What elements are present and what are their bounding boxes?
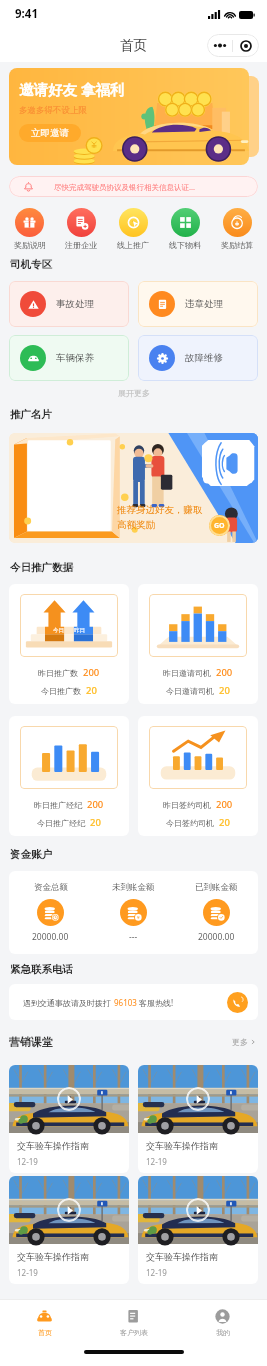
button[interactable]: 今日 [9, 584, 129, 704]
staticText: 今日签约司机 [166, 818, 214, 828]
staticText: 昨日邀请司机 [163, 668, 211, 678]
staticText: 首页 [38, 1328, 52, 1337]
button[interactable]: 昨日签约司机 [138, 716, 258, 836]
staticText: 遇到交通事故请及时拨打 [23, 997, 114, 1008]
staticText: 昨日推广数 [38, 668, 78, 678]
staticText: 客户列表 [120, 1328, 148, 1337]
staticText: 已到账金额 [195, 882, 238, 893]
button[interactable]: 奖励说明 [4, 208, 55, 250]
staticText: 200 [216, 666, 233, 679]
staticText: 20 [219, 684, 230, 697]
button[interactable]: 我的 [178, 1300, 267, 1344]
staticText: 尽快完成驾驶员协议及银行相关信息认证... [54, 182, 196, 192]
staticText: 奖励结算 [221, 240, 253, 250]
staticText: 奖励说明 [14, 240, 46, 250]
staticText: 线下物料 [169, 240, 201, 250]
other: Play video [186, 1198, 210, 1222]
other: Play video [57, 1087, 81, 1111]
staticText: 200 [216, 798, 233, 811]
staticText: 20000.00 [32, 931, 69, 943]
staticText: 线上推广 [117, 240, 149, 250]
staticText: --- [129, 931, 138, 943]
other: Go to promotion card [209, 515, 230, 536]
staticText: 今日推广经纪 [37, 818, 85, 828]
button[interactable]: 已到账金额 [175, 882, 258, 943]
button[interactable]: More options [207, 34, 232, 57]
staticText: 车辆保养 [56, 352, 94, 364]
staticText: 96103 [114, 997, 137, 1008]
button[interactable]: 尽快完成驾驶员协议及银行相关信息认证... [9, 176, 258, 197]
staticText: 20 [219, 816, 230, 829]
staticText: 交车验车操作指南 [146, 1140, 218, 1151]
staticText: 违章处理 [185, 298, 223, 310]
staticText: 事故处理 [56, 298, 94, 310]
staticText: 20000.00 [198, 931, 235, 943]
staticText: 首页 [120, 37, 147, 54]
button[interactable]: 事故处理 [9, 281, 129, 327]
staticText: 注册企业 [65, 240, 97, 250]
staticText: 营销课堂 [9, 1035, 230, 1049]
staticText: 资金总额 [34, 882, 68, 893]
staticText: 昨日签约司机 [163, 800, 211, 810]
staticText: 今日邀请司机 [166, 686, 214, 696]
button[interactable]: Play video [9, 1176, 129, 1284]
staticText: 20 [86, 684, 97, 697]
staticText: 12-19 [17, 1156, 38, 1165]
button[interactable]: 故障维修 [138, 335, 258, 381]
button[interactable]: 客户列表 [89, 1300, 178, 1344]
staticText: 今日推广数 [41, 686, 81, 696]
button[interactable]: 展开更多 [106, 387, 162, 399]
staticText: 推荐身边好友，赚取 [117, 504, 203, 516]
button[interactable]: 奖励结算 [211, 208, 263, 250]
button[interactable]: 首页 [0, 1300, 89, 1344]
staticText: 200 [87, 798, 104, 811]
button[interactable]: 线下物料 [159, 208, 211, 250]
staticText: 我的 [216, 1328, 230, 1337]
staticText: 今日 [53, 627, 64, 634]
staticText: 高额奖励 [117, 519, 155, 531]
staticText: 200 [83, 666, 100, 679]
button[interactable]: 线上推广 [107, 208, 159, 250]
staticText: 昨日推广经纪 [34, 800, 82, 810]
other: Play video [186, 1087, 210, 1111]
other: Play video [57, 1198, 81, 1222]
staticText: 12-19 [17, 1267, 38, 1276]
button[interactable]: 邀请好友 拿福利 [9, 68, 249, 165]
staticText: 多邀多得不设上限 [19, 105, 87, 116]
button[interactable]: Mini program menu [233, 34, 259, 57]
button[interactable]: 车辆保养 [9, 335, 129, 381]
button[interactable]: Play video [138, 1065, 258, 1173]
staticText: 交车验车操作指南 [17, 1140, 89, 1151]
staticText: 交车验车操作指南 [17, 1251, 89, 1262]
staticText: 司机专区 [10, 258, 52, 271]
staticText: 今日推广数据 [10, 561, 73, 574]
other: Call service hotline [227, 992, 248, 1013]
staticText: 交车验车操作指南 [146, 1251, 218, 1262]
button[interactable]: 未到账金额 [92, 882, 175, 943]
staticText: 9:41 [15, 6, 38, 22]
button[interactable]: Go to promotion card [9, 433, 258, 543]
button[interactable]: 昨日邀请司机 [138, 584, 258, 704]
staticText: 12-19 [146, 1267, 167, 1276]
button[interactable]: 立即邀请 [19, 124, 81, 142]
staticText: 昨日 [74, 627, 85, 634]
button[interactable]: 资金总额 [9, 882, 92, 943]
button[interactable]: 注册企业 [55, 208, 107, 250]
button[interactable]: 昨日推广经纪 [9, 716, 129, 836]
staticText: 立即邀请 [31, 127, 69, 139]
staticText: 资金账户 [10, 848, 52, 861]
staticText: 更多 [232, 1037, 248, 1047]
button[interactable]: 更多 [230, 1035, 258, 1049]
staticText: 紧急联系电话 [10, 963, 73, 976]
staticText: 20 [90, 816, 101, 829]
button[interactable]: 遇到交通事故请及时拨打 [9, 984, 258, 1020]
staticText: 推广名片 [10, 408, 52, 421]
button[interactable]: Play video [9, 1065, 129, 1173]
staticText: 未到账金额 [112, 882, 155, 893]
staticText: 故障维修 [185, 352, 223, 364]
button[interactable]: Play video [138, 1176, 258, 1284]
staticText: GO [214, 521, 225, 531]
button[interactable]: 违章处理 [138, 281, 258, 327]
staticText: 邀请好友 拿福利 [19, 79, 125, 99]
staticText: 12-19 [146, 1156, 167, 1165]
